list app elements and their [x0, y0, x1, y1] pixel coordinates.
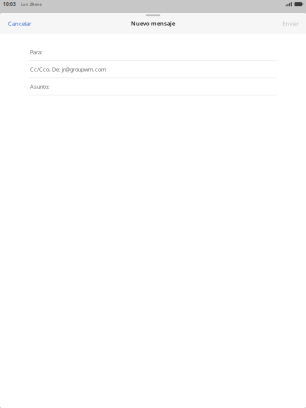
staticText: Nuevo mensaje [131, 19, 175, 27]
button[interactable]: Cc/Cco, De: [0, 61, 306, 78]
staticText: Para: [30, 48, 43, 56]
staticText: Lun 28 ene [20, 1, 41, 7]
button[interactable]: Cancelar [0, 16, 39, 31]
button[interactable]: Para: [0, 44, 306, 61]
staticText: jr@groupwm.com [62, 66, 106, 73]
staticText: Cc/Cco, De: [30, 66, 61, 73]
staticText: Asunto: [30, 83, 50, 90]
button[interactable]: Asunto: [0, 78, 306, 96]
staticText: 10:03 [3, 1, 16, 7]
staticText: Cancelar [8, 20, 31, 27]
staticText: Enviar [282, 20, 298, 27]
button[interactable]: Enviar [275, 16, 306, 31]
